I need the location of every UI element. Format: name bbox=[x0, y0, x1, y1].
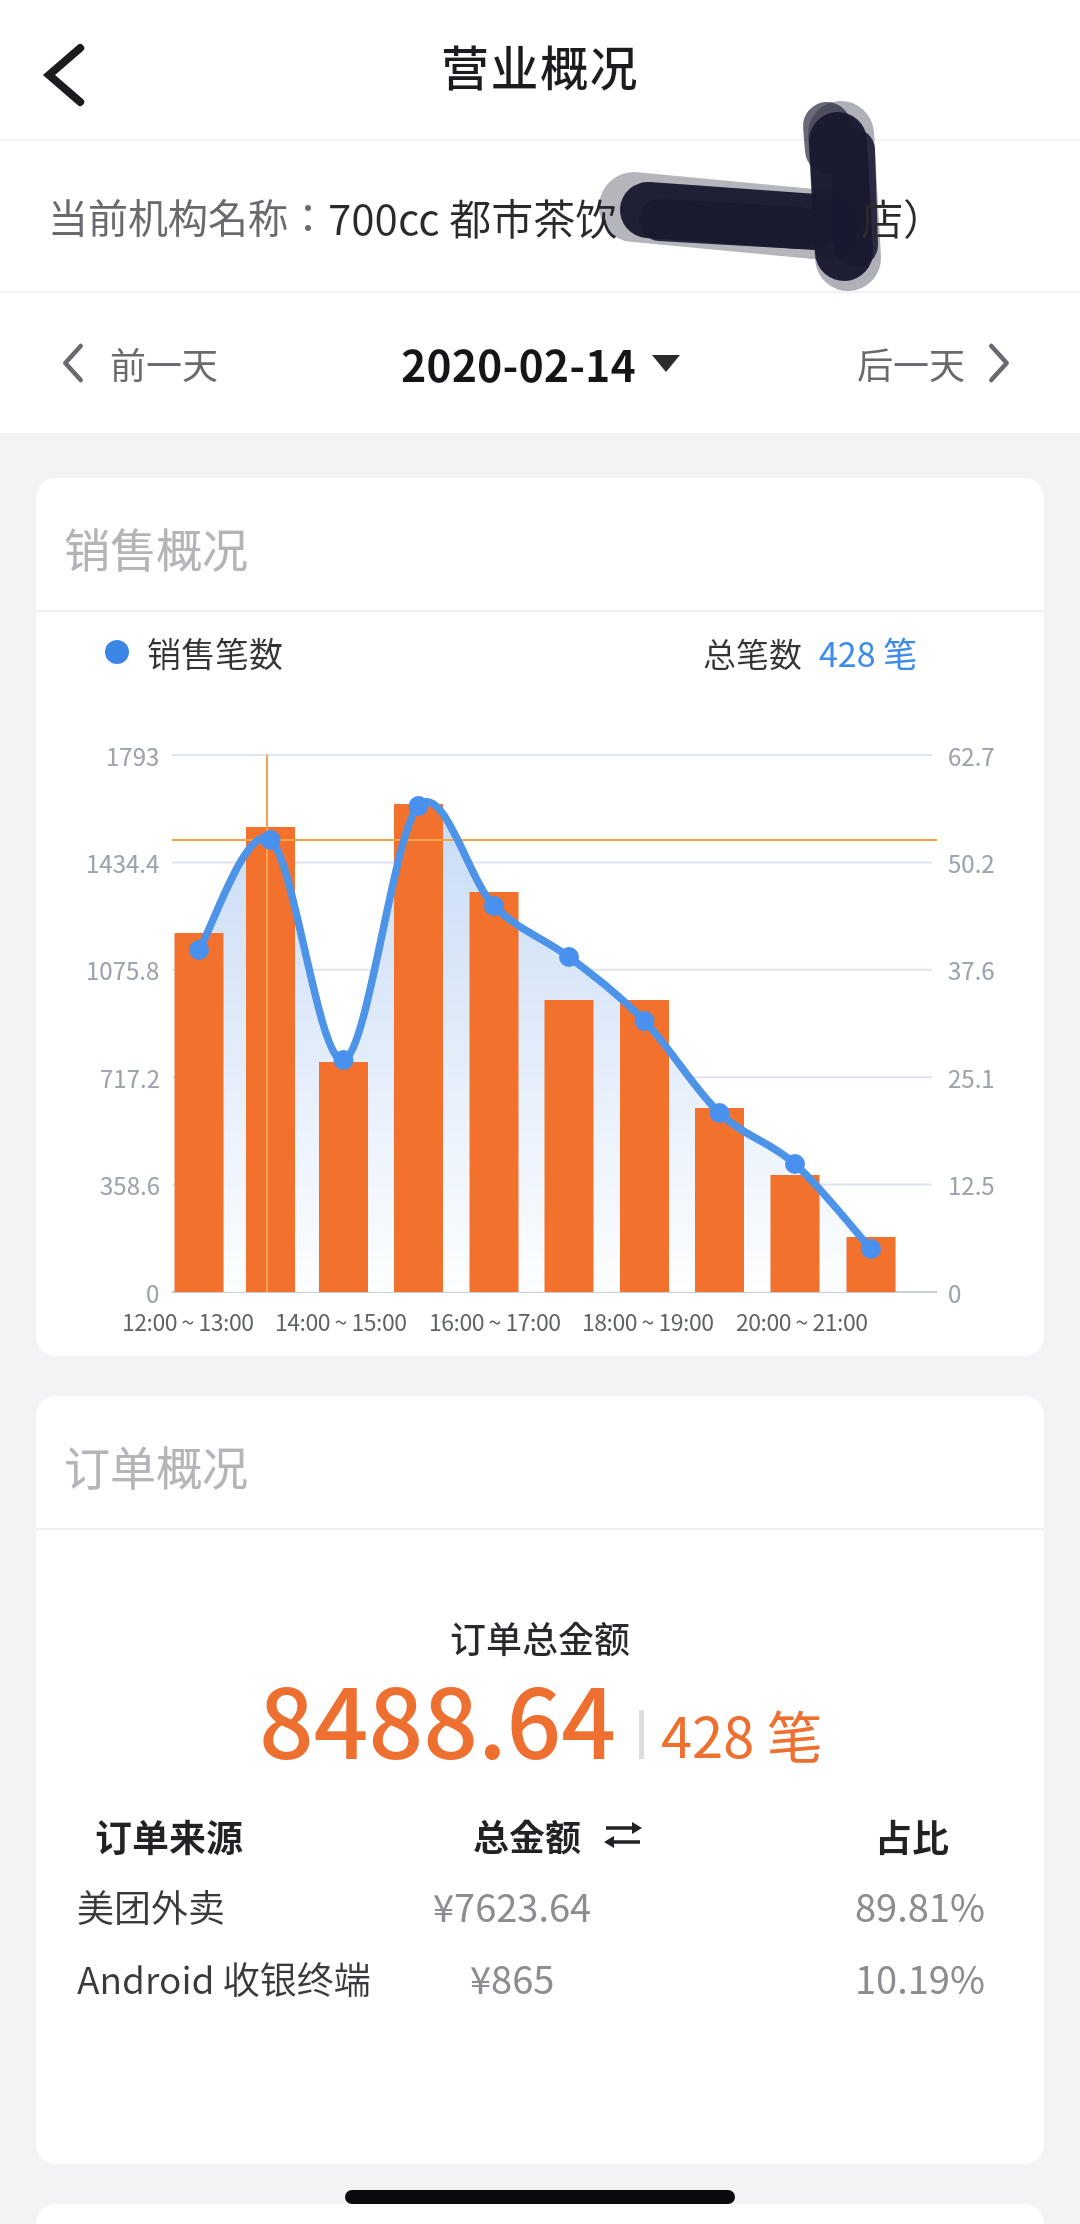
staticText: 428 笔 bbox=[661, 1693, 823, 1774]
staticText: 20:00 ~ 21:00 bbox=[736, 1304, 868, 1337]
staticText: 总笔数 bbox=[703, 629, 802, 677]
staticText: 8488.64 bbox=[259, 1648, 616, 1787]
staticText: 717.2 bbox=[100, 1060, 160, 1095]
staticText: 营业概况 bbox=[441, 30, 640, 100]
staticText: 占比 bbox=[875, 1809, 949, 1863]
staticText: 1075.8 bbox=[86, 952, 160, 987]
staticText: ¥865 bbox=[470, 1950, 555, 2005]
button[interactable] bbox=[20, 30, 110, 120]
staticText: 销售概况 bbox=[64, 514, 248, 581]
staticText: 订单概况 bbox=[64, 1432, 248, 1499]
staticText: 428 笔 bbox=[819, 628, 918, 677]
button[interactable]: 2020-02-14 bbox=[380, 313, 700, 413]
staticText: 12.5 bbox=[948, 1167, 995, 1202]
button[interactable]: 前一天 bbox=[62, 313, 312, 413]
staticText: 前一天 bbox=[110, 337, 219, 389]
staticText: 后一天 bbox=[857, 337, 966, 389]
staticText: ¥7623.64 bbox=[433, 1878, 592, 1933]
staticText: Android 收银终端 bbox=[77, 1951, 371, 2005]
staticText: 10.19% bbox=[855, 1950, 985, 2005]
staticText: 50.2 bbox=[948, 845, 995, 880]
staticText: 62.7 bbox=[948, 738, 995, 773]
staticText: 0 bbox=[948, 1275, 962, 1310]
staticText: 37.6 bbox=[948, 952, 995, 987]
staticText: 358.6 bbox=[100, 1167, 160, 1202]
staticText: 美团外卖 bbox=[77, 1879, 225, 1933]
staticText: 25.1 bbox=[948, 1060, 995, 1095]
staticText: 1793 bbox=[106, 738, 160, 773]
button[interactable]: 总金额 bbox=[407, 1800, 707, 1870]
staticText: 当前机构名称： bbox=[48, 187, 328, 245]
staticText: 14:00 ~ 15:00 bbox=[275, 1304, 407, 1337]
staticText: 订单来源 bbox=[95, 1809, 243, 1863]
button[interactable]: 后一天 bbox=[770, 313, 1010, 413]
staticText: 总金额 bbox=[473, 1809, 582, 1861]
staticText: 89.81% bbox=[855, 1878, 985, 1933]
staticText: 2020-02-14 bbox=[401, 332, 636, 394]
staticText: 订单总金额 bbox=[450, 1611, 631, 1663]
staticText: 12:00 ~ 13:00 bbox=[122, 1304, 254, 1337]
staticText: 0 bbox=[146, 1275, 160, 1310]
staticText: 16:00 ~ 17:00 bbox=[429, 1304, 561, 1337]
staticText: 1434.4 bbox=[86, 845, 160, 880]
staticText: 销售笔数 bbox=[147, 628, 283, 677]
staticText: 700cc 都市茶饮（ bbox=[328, 186, 660, 247]
staticText: 店） bbox=[861, 186, 946, 247]
staticText: 18:00 ~ 19:00 bbox=[582, 1304, 714, 1337]
